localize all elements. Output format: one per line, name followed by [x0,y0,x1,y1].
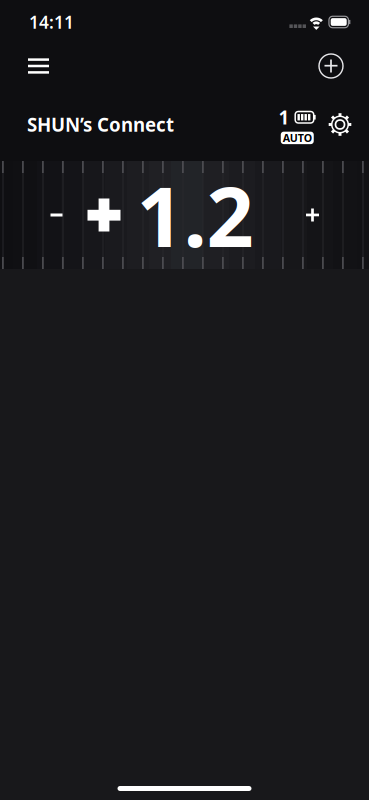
staticText: AUTO [283,131,312,145]
button[interactable]: Settings [316,100,364,148]
staticText: SHUN’s Connect [27,112,174,137]
button[interactable]: Add device [305,44,357,88]
button[interactable]: Menu [11,44,66,88]
staticText: 1.2 [136,160,253,270]
button[interactable]: Decrease [33,185,79,245]
button[interactable]: Increase [289,185,335,245]
staticText: 14:11 [29,10,74,33]
staticText: 1 [278,105,289,130]
